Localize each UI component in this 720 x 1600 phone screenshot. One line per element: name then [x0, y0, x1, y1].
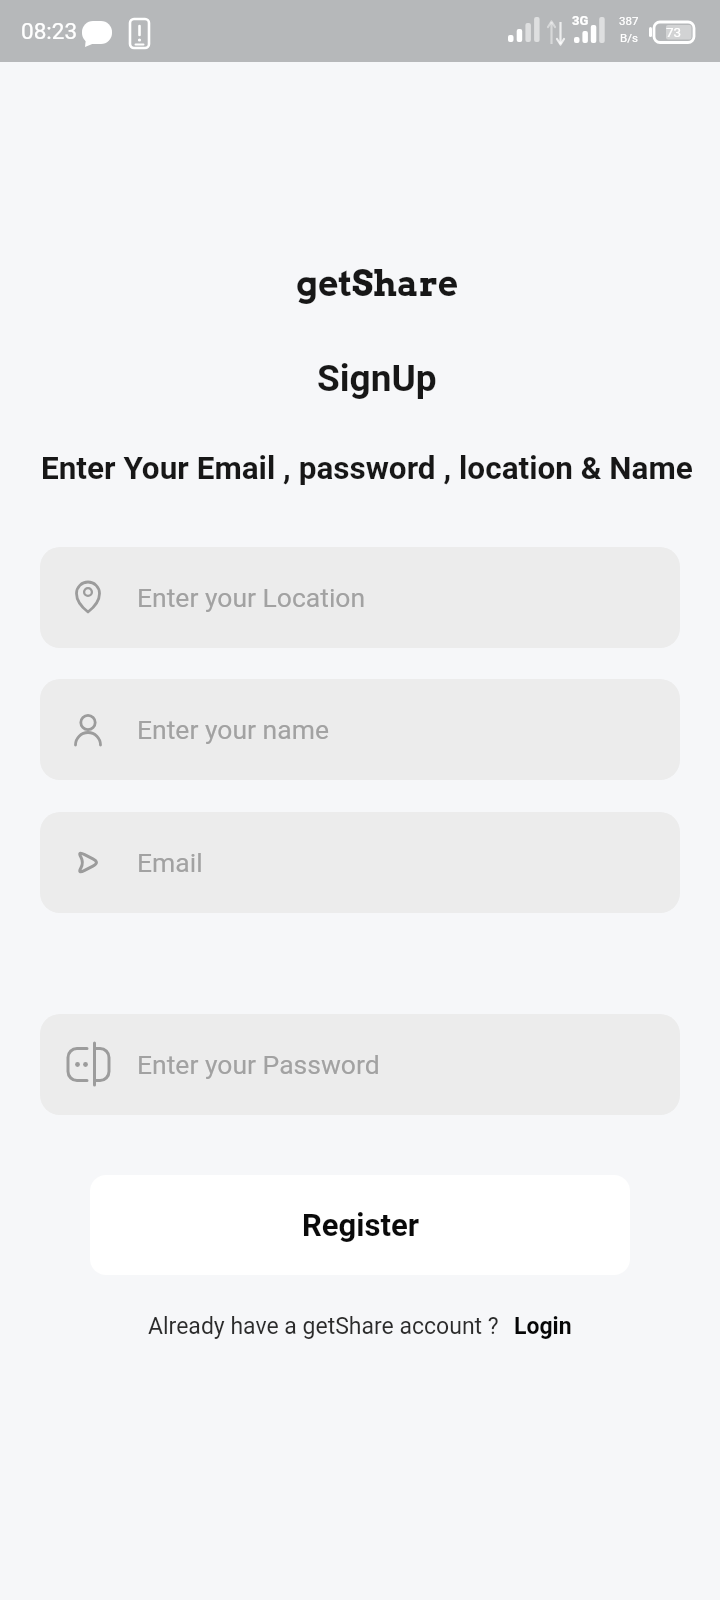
button[interactable]: Enter your name — [40, 679, 680, 780]
button[interactable]: Login — [514, 1313, 572, 1340]
staticText: Email — [137, 847, 203, 878]
button[interactable]: Register — [90, 1175, 630, 1275]
staticText: Enter your Location — [137, 582, 366, 613]
staticText: Enter Your Email , password , location &… — [41, 450, 693, 487]
staticText: 08:23 — [21, 18, 78, 44]
button[interactable]: Enter your Location — [40, 547, 680, 648]
staticText: 73 — [666, 24, 682, 40]
staticText: Already have a getShare account ? — [148, 1313, 499, 1340]
staticText: 3G — [572, 13, 589, 28]
staticText: 387 — [619, 14, 639, 27]
staticText: Enter your name — [137, 714, 329, 745]
staticText: B/s — [620, 31, 638, 44]
staticText: SignUp — [317, 357, 437, 400]
staticText: getShare — [296, 262, 459, 304]
staticText: Enter your Password — [137, 1049, 380, 1080]
button[interactable]: Email — [40, 812, 680, 913]
staticText: Register — [302, 1207, 419, 1243]
button[interactable]: Enter your Password — [40, 1014, 680, 1115]
staticText: Login — [514, 1313, 572, 1340]
